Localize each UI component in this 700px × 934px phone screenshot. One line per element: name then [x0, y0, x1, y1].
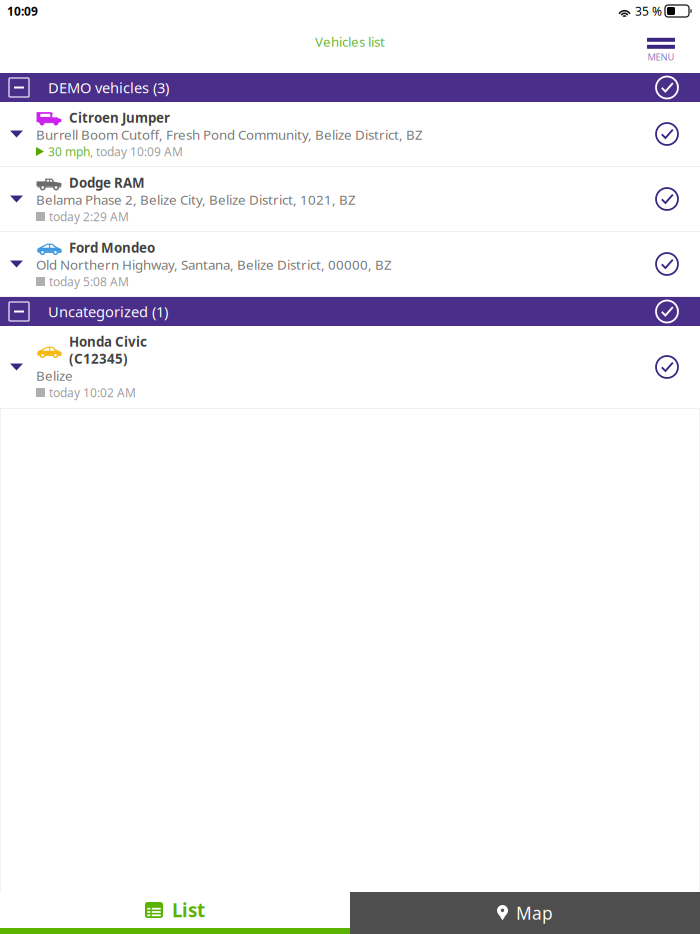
staticText: List [172, 898, 205, 922]
staticText: Burrell Boom Cutoff, Fresh Pond Communit… [36, 126, 423, 143]
staticText: Honda Civic [69, 333, 147, 350]
staticText: DEMO vehicles (3) [48, 78, 169, 97]
button[interactable]: Honda Civic [0, 326, 700, 409]
staticText: Belama Phase 2, Belize City, Belize Dist… [36, 191, 356, 208]
button[interactable]: Map [350, 892, 700, 934]
staticText: Map [516, 901, 553, 924]
staticText: 30 mph [48, 143, 90, 159]
button[interactable]: Menu [647, 32, 700, 63]
staticText: today 2:29 AM [49, 208, 129, 224]
button[interactable]: List [0, 892, 350, 934]
staticText: , today 10:09 AM [90, 143, 183, 159]
button[interactable]: Ford Mondeo [0, 232, 700, 297]
button[interactable]: Dodge RAM [0, 167, 700, 232]
staticText: 10:09 [7, 3, 38, 19]
staticText: Ford Mondeo [69, 239, 155, 256]
staticText: Old Northern Highway, Santana, Belize Di… [36, 256, 392, 273]
button[interactable]: DEMO vehicles (3) [0, 73, 700, 102]
staticText: Citroen Jumper [69, 109, 170, 126]
button[interactable]: Citroen Jumper [0, 102, 700, 167]
staticText: MENU [647, 51, 674, 63]
staticText: today 5:08 AM [49, 273, 129, 289]
staticText: today 10:02 AM [49, 384, 136, 400]
staticText: (C12345) [69, 350, 128, 367]
staticText: Uncategorized (1) [48, 302, 168, 321]
staticText: Belize [36, 367, 73, 384]
button[interactable]: Uncategorized (1) [0, 297, 700, 326]
staticText: 35 % [635, 3, 662, 19]
staticText: Dodge RAM [69, 174, 145, 191]
staticText: Vehicles list [315, 33, 385, 50]
